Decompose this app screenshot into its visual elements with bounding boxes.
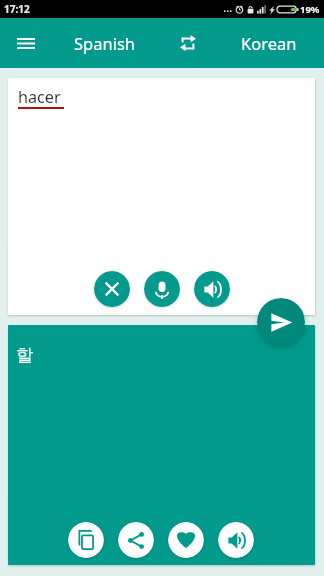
staticText: hacer: [18, 86, 61, 108]
button[interactable]: Copy: [68, 522, 104, 558]
button[interactable]: Translate: [257, 298, 305, 346]
staticText: Korean: [241, 32, 297, 54]
button[interactable]: Spanish: [50, 18, 160, 68]
staticText: 할: [16, 344, 34, 366]
staticText: 17:12: [4, 2, 30, 16]
button[interactable]: Listen: [218, 522, 254, 558]
button[interactable]: Add to favourites: [168, 522, 204, 558]
staticText: Spanish: [74, 32, 136, 54]
button[interactable]: Voice input: [144, 271, 180, 307]
button[interactable]: Swap languages: [164, 18, 211, 68]
button[interactable]: Listen: [194, 271, 230, 307]
button[interactable]: Menu: [2, 18, 50, 68]
button[interactable]: Share: [118, 522, 154, 558]
staticText: 19%: [300, 3, 320, 16]
button[interactable]: Clear: [94, 271, 130, 307]
button[interactable]: Korean: [214, 18, 324, 68]
